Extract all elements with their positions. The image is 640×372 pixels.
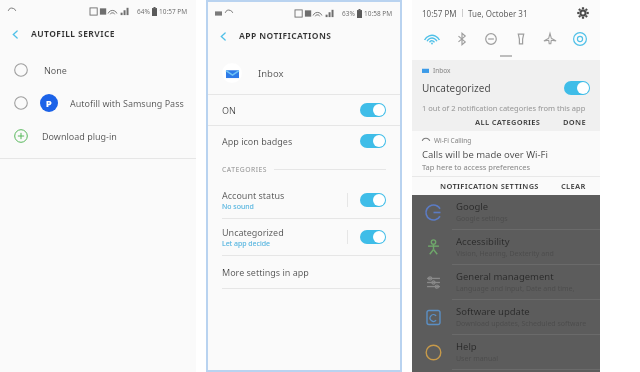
staticText: 64% [137,7,150,16]
staticText: Download plug-in [42,130,117,142]
button[interactable]: Toggle [360,103,386,117]
button[interactable]: Software update [424,300,588,334]
button[interactable]: DONE [559,117,590,127]
button[interactable]: Toggle [564,81,590,95]
staticText: Inbox [433,66,451,75]
button[interactable]: Settings [576,6,590,20]
staticText: Google settings [456,214,508,224]
staticText: None [44,64,67,76]
button[interactable]: Toggle [360,193,386,207]
staticText: AUTOFILL SERVICE [31,28,115,40]
button[interactable]: Quick setting 1 [454,31,470,47]
staticText: Calls will be made over Wi-Fi [422,148,548,161]
staticText: 10:58 PM [364,9,393,18]
staticText: P [46,97,52,109]
button[interactable]: Account status [222,182,386,218]
button[interactable]: Quick setting 2 [483,31,499,47]
staticText: More settings in app [222,266,309,278]
button[interactable]: Download plug-in [14,120,196,152]
button[interactable]: Toggle [360,134,386,148]
button[interactable]: ALL CATEGORIES [471,117,545,127]
button[interactable]: Uncategorized [422,75,590,101]
staticText: APP NOTIFICATIONS [239,30,332,42]
staticText: NOTIFICATION SETTINGS [440,181,539,191]
button[interactable]: Inbox [222,56,400,90]
button[interactable]: More settings in app [222,256,386,288]
staticText: ALL CATEGORIES [475,117,541,127]
staticText: Vision, Hearing, Dexterity and interacti… [456,249,588,259]
staticText: No sound [222,202,254,212]
staticText: Account status [222,189,285,201]
button[interactable]: P [14,86,196,120]
staticText: 63% [342,9,355,18]
button[interactable]: Help [424,335,588,369]
button[interactable]: Calls will be made over Wi-Fi [412,145,600,172]
staticText: CATEGORIES [222,165,268,174]
staticText: User manual [456,354,498,364]
staticText: 10:57 PM [159,7,188,16]
staticText: Accessibility [456,235,510,248]
button[interactable]: App icon badges [222,126,386,156]
staticText: DONE [563,117,586,127]
staticText: Inbox [258,67,284,80]
button[interactable]: None [14,54,196,86]
staticText: Uncategorized [222,226,284,238]
staticText: Software update [456,305,530,318]
staticText: 10:57 PM [422,8,457,19]
button[interactable]: ON [222,95,386,125]
staticText: General management [456,270,554,283]
button[interactable]: Uncategorized [222,219,386,255]
button[interactable]: Accessibility [424,230,588,264]
staticText: 1 out of 2 notification categories from … [422,103,586,113]
staticText: Help [456,340,477,353]
staticText: Autofill with Samsung Pass [70,97,184,109]
button[interactable]: AUTOFILL SERVICE [10,22,196,46]
staticText: Tue, October 31 [468,8,528,19]
staticText: Let app decide [222,239,270,249]
button[interactable]: Quick setting 3 [513,31,529,47]
button[interactable]: CLEAR [557,181,590,191]
button[interactable]: Toggle [360,230,386,244]
staticText: CLEAR [561,181,586,191]
button[interactable]: Quick setting 5 [572,31,588,47]
button[interactable]: NOTIFICATION SETTINGS [436,181,543,191]
button[interactable]: Quick setting 0 [424,31,440,47]
staticText: App icon badges [222,135,293,147]
staticText: Tap here to access preferences [422,162,531,172]
staticText: Uncategorized [422,81,491,95]
button[interactable]: Quick setting 4 [542,31,558,47]
button[interactable]: APP NOTIFICATIONS [218,24,400,48]
button[interactable]: General management [424,265,588,299]
staticText: Google [456,200,489,213]
staticText: Download updates, Scheduled software up.… [456,319,588,329]
staticText: ON [222,104,236,116]
button[interactable]: Google [424,195,588,229]
staticText: Language and input, Date and time, Reset [456,284,588,294]
staticText: Wi-Fi Calling [434,136,472,145]
